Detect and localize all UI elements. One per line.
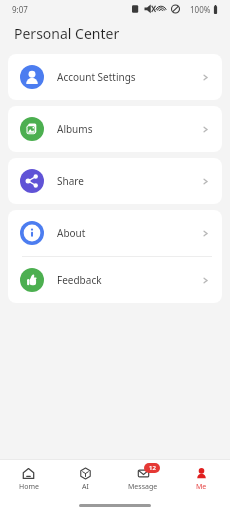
- staticText: Albums: [57, 122, 93, 136]
- staticText: Home: [19, 482, 39, 492]
- button[interactable]: Feedback: [8, 257, 222, 303]
- staticText: Share: [57, 174, 84, 188]
- staticText: Message: [128, 482, 158, 492]
- staticText: 12: [149, 464, 156, 472]
- button[interactable]: AI: [57, 460, 114, 498]
- button[interactable]: Account Settings: [8, 54, 222, 100]
- staticText: 100%: [190, 4, 211, 15]
- button[interactable]: Share: [8, 158, 222, 204]
- staticText: About: [57, 226, 86, 240]
- staticText: Feedback: [57, 273, 102, 287]
- staticText: AI: [82, 482, 89, 492]
- other: Home: [22, 467, 35, 480]
- staticText: 9:07: [12, 4, 28, 15]
- button[interactable]: Home: [0, 460, 57, 498]
- button[interactable]: Message: [114, 460, 172, 498]
- staticText: Me: [196, 482, 207, 492]
- other: Me: [195, 467, 208, 480]
- button[interactable]: Albums: [8, 106, 222, 152]
- other: AI: [79, 467, 92, 480]
- button[interactable]: About: [8, 210, 222, 256]
- staticText: Account Settings: [57, 70, 136, 84]
- staticText: Personal Center: [14, 24, 120, 43]
- other: Message: [137, 467, 150, 480]
- button[interactable]: Me: [172, 460, 230, 498]
